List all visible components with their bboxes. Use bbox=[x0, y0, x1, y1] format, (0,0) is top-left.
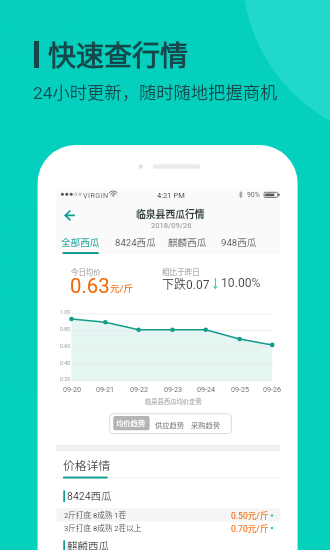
staticText: 09-22 bbox=[130, 385, 149, 393]
staticText: 8424西瓜 bbox=[67, 488, 112, 501]
staticText: VIRGIN bbox=[83, 191, 109, 199]
staticText: 0.60 bbox=[60, 343, 71, 349]
staticText: 麒麟西瓜 bbox=[67, 538, 109, 550]
staticText: 09-26 bbox=[263, 385, 282, 393]
staticText: 价格详情 bbox=[63, 456, 111, 471]
staticText: 0.50元/斤 bbox=[231, 509, 269, 520]
button[interactable]: 948西瓜 bbox=[220, 233, 257, 251]
staticText: 采购趋势 bbox=[191, 420, 221, 431]
staticText: 2斤打底 8成熟 1茬 bbox=[64, 509, 127, 520]
staticText: 2018/09/26 bbox=[151, 221, 192, 230]
button[interactable]: Back bbox=[58, 204, 81, 227]
staticText: 0.20 bbox=[60, 376, 71, 382]
staticText: 09-20 bbox=[63, 385, 82, 393]
staticText: 今日均价 bbox=[71, 266, 101, 277]
staticText: 快速查行情 bbox=[48, 34, 189, 70]
button[interactable]: 供应趋势 bbox=[155, 418, 185, 432]
staticText: 3斤打底 8成熟 2茬以上 bbox=[64, 522, 142, 533]
staticText: 90% bbox=[247, 191, 260, 199]
button[interactable]: 麒麟西瓜 bbox=[168, 233, 207, 251]
button[interactable]: 均价趋势 bbox=[113, 416, 149, 430]
staticText: 均价趋势 bbox=[116, 418, 146, 429]
button[interactable]: 8424西瓜 bbox=[115, 233, 155, 251]
staticText: 0.63 bbox=[70, 274, 110, 298]
staticText: 24小时更新，随时随地把握商机 bbox=[33, 79, 278, 103]
staticText: 10.00% bbox=[221, 276, 261, 290]
staticText: 948西瓜 bbox=[221, 235, 257, 249]
staticText: 0.70元/斤 bbox=[231, 522, 269, 533]
staticText: 0.40 bbox=[60, 360, 71, 366]
staticText: 麒麟西瓜 bbox=[168, 235, 207, 249]
staticText: 09-23 bbox=[164, 385, 183, 393]
staticText: 0.80 bbox=[60, 326, 71, 332]
staticText: 8424西瓜 bbox=[115, 235, 155, 249]
staticText: 供应趋势 bbox=[155, 420, 185, 431]
staticText: 09-24 bbox=[197, 385, 216, 393]
staticText: 4:21 PM bbox=[157, 191, 185, 200]
staticText: 临泉县西瓜行情 bbox=[136, 207, 205, 221]
staticText: 全部西瓜 bbox=[61, 235, 100, 249]
staticText: 相比于昨日 bbox=[162, 266, 200, 277]
staticText: 下跌0.07 bbox=[162, 275, 210, 291]
button[interactable]: 采购趋势 bbox=[191, 418, 221, 432]
staticText: 09-25 bbox=[231, 385, 250, 393]
staticText: 临泉县西瓜均价走势 bbox=[145, 397, 202, 406]
staticText: 1.00 bbox=[60, 309, 71, 315]
staticText: 09-21 bbox=[96, 385, 115, 393]
staticText: 元/斤 bbox=[110, 281, 134, 294]
button[interactable]: 全部西瓜 bbox=[61, 233, 100, 251]
